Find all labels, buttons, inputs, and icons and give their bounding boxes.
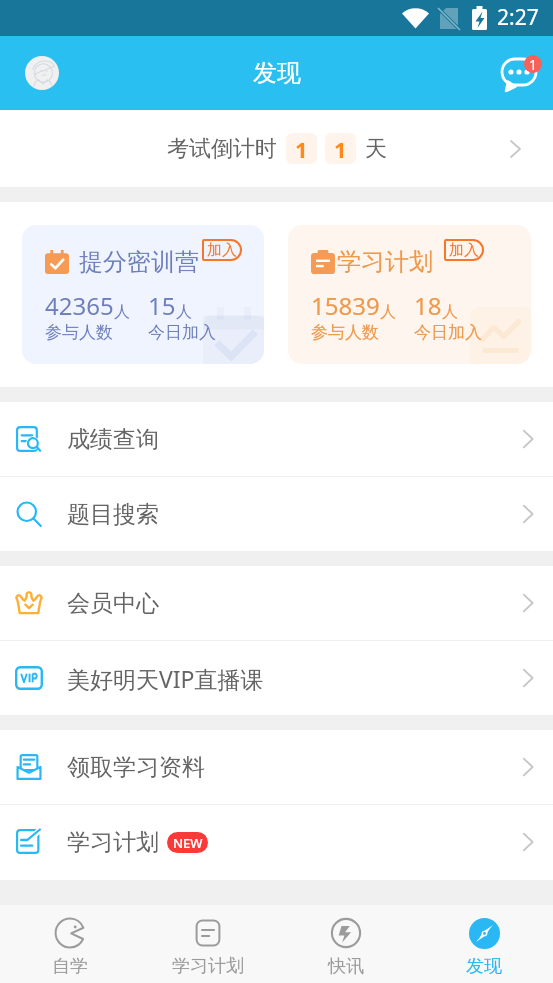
button[interactable]: 考试倒计时	[0, 110, 553, 187]
staticText: 发现	[466, 955, 502, 978]
button[interactable]: Messages	[496, 52, 542, 98]
staticText: 美好明天VIP直播课	[67, 663, 264, 694]
button[interactable]: 学习计划	[139, 905, 277, 983]
staticText: 学习计划	[337, 247, 433, 277]
staticText: 人	[442, 302, 458, 322]
staticText: 42365	[45, 289, 114, 322]
button[interactable]: 学习计划	[288, 225, 531, 364]
staticText: 人	[380, 302, 396, 322]
button[interactable]: 题目搜索	[0, 477, 553, 551]
staticText: 学习计划	[67, 828, 159, 857]
button[interactable]: 学习计划	[0, 805, 553, 879]
staticText: 会员中心	[67, 589, 159, 618]
staticText: 天	[365, 135, 387, 163]
button[interactable]: 会员中心	[0, 566, 553, 640]
staticText: 学习计划	[172, 955, 244, 978]
staticText: 自学	[52, 955, 88, 978]
button[interactable]: 成绩查询	[0, 402, 553, 476]
staticText: 今日加入	[414, 322, 482, 343]
staticText: 成绩查询	[67, 425, 159, 454]
staticText: 人	[114, 302, 130, 322]
staticText: 1	[295, 134, 308, 164]
staticText: 参与人数	[311, 322, 379, 343]
staticText: 快讯	[328, 955, 364, 978]
staticText: 1	[334, 134, 347, 164]
staticText: 加入	[449, 241, 479, 260]
button[interactable]: 提分密训营	[22, 225, 264, 364]
staticText: 领取学习资料	[67, 753, 205, 782]
staticText: 18	[414, 289, 442, 322]
staticText: 15839	[311, 289, 380, 322]
staticText: 15	[148, 289, 176, 322]
staticText: 加入	[207, 241, 237, 260]
button[interactable]: 领取学习资料	[0, 730, 553, 804]
staticText: 题目搜索	[67, 500, 159, 529]
button[interactable]: 自学	[0, 905, 139, 983]
staticText: 1	[529, 55, 538, 73]
staticText: 今日加入	[148, 322, 216, 343]
staticText: 提分密训营	[79, 247, 199, 277]
staticText: NEW	[173, 834, 203, 852]
staticText: 2:27	[497, 3, 539, 32]
staticText: 人	[176, 302, 192, 322]
staticText: 参与人数	[45, 322, 113, 343]
button[interactable]: 发现	[415, 905, 553, 983]
staticText: 考试倒计时	[167, 135, 277, 163]
button[interactable]: 快讯	[277, 905, 415, 983]
button[interactable]: 美好明天VIP直播课	[0, 641, 553, 715]
staticText: 发现	[253, 58, 301, 88]
button[interactable]: Profile	[25, 56, 59, 90]
